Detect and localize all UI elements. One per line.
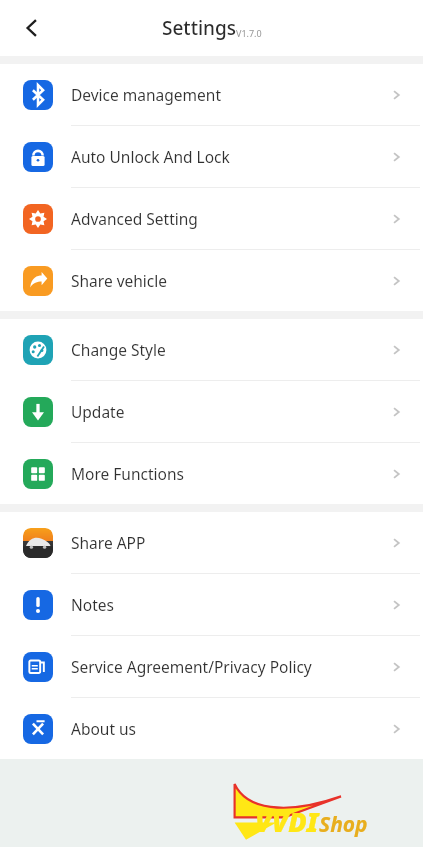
button[interactable]: Update <box>0 381 423 442</box>
staticText: Notes <box>71 594 389 615</box>
staticText: Settings <box>162 15 236 41</box>
staticText: V1.7.0 <box>236 27 262 39</box>
staticText: Service Agreement/Privacy Policy <box>71 656 389 677</box>
staticText: More Functions <box>71 463 389 484</box>
button[interactable]: Advanced Setting <box>0 188 423 249</box>
staticText: Shop <box>319 810 368 839</box>
button[interactable]: Back <box>8 4 56 52</box>
staticText: Device management <box>71 84 389 105</box>
button[interactable]: About us <box>0 698 423 759</box>
staticText: Auto Unlock And Lock <box>71 146 389 167</box>
button[interactable]: More Functions <box>0 443 423 504</box>
staticText: Share vehicle <box>71 270 389 291</box>
staticText: Share APP <box>71 532 389 553</box>
staticText: About us <box>71 718 389 739</box>
staticText: Change Style <box>71 339 389 360</box>
button[interactable]: Share vehicle <box>0 250 423 311</box>
button[interactable]: Service Agreement/Privacy Policy <box>0 636 423 697</box>
button[interactable]: Device management <box>0 64 423 125</box>
button[interactable]: Auto Unlock And Lock <box>0 126 423 187</box>
button[interactable]: Notes <box>0 574 423 635</box>
staticText: Advanced Setting <box>71 208 389 229</box>
staticText: VVDI <box>255 803 319 840</box>
button[interactable]: Share APP <box>0 512 423 573</box>
staticText: Update <box>71 401 389 422</box>
button[interactable]: Change Style <box>0 319 423 380</box>
